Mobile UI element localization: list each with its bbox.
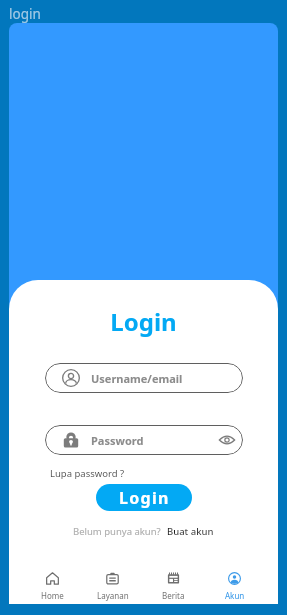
button[interactable]: Buat akun [167, 525, 214, 538]
staticText: Login [9, 305, 278, 338]
staticText: Home [41, 590, 64, 601]
staticText: login [9, 5, 41, 23]
staticText: Password [91, 433, 219, 448]
button[interactable]: Layanan [82, 568, 143, 601]
button[interactable]: Berita [143, 568, 204, 601]
button[interactable]: Username/email [45, 363, 243, 393]
button[interactable]: Home [22, 568, 82, 601]
button[interactable]: Login [96, 484, 192, 511]
button[interactable]: Akun [204, 568, 265, 601]
button[interactable]: Password [45, 425, 243, 455]
staticText: Berita [162, 590, 185, 601]
staticText: Username/email [91, 371, 235, 386]
staticText: Belum punya akun? [73, 525, 161, 538]
button[interactable]: Lupa password ? [50, 467, 125, 480]
staticText: Layanan [97, 590, 129, 601]
staticText: Akun [225, 590, 245, 601]
staticText: Login [119, 487, 170, 509]
other: Show password [219, 432, 235, 448]
